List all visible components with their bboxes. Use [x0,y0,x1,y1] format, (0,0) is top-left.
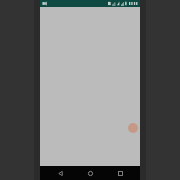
button[interactable]: Recent apps [110,166,130,180]
button[interactable]: Home [80,166,100,180]
button[interactable]: Back [50,166,70,180]
button[interactable]: Action [128,123,138,133]
